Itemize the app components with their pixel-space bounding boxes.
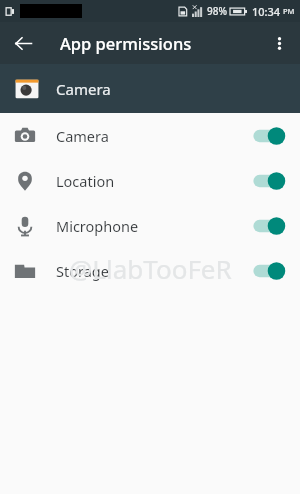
button[interactable]: Camera [0, 113, 300, 158]
button[interactable]: Toggle permission [252, 215, 286, 237]
staticText: 98% [207, 4, 227, 18]
staticText: App permissions [60, 32, 192, 54]
staticText: Storage [56, 261, 252, 281]
button[interactable]: Toggle permission [252, 170, 286, 192]
button[interactable]: Camera [0, 64, 300, 113]
staticText: PM [283, 6, 295, 16]
staticText: @LlabTooFeR [69, 251, 232, 286]
button[interactable]: Back [6, 26, 40, 60]
button[interactable]: Microphone [0, 203, 300, 248]
button[interactable]: Location [0, 158, 300, 203]
staticText: Camera [56, 126, 252, 146]
button[interactable]: More options [262, 26, 296, 60]
button[interactable]: Toggle permission [252, 125, 286, 147]
staticText: Location [56, 171, 252, 191]
staticText: 10:34 [252, 4, 281, 19]
staticText: Camera [56, 79, 111, 99]
button[interactable]: Toggle permission [252, 260, 286, 282]
staticText: Microphone [56, 216, 252, 236]
button[interactable]: Storage [0, 248, 300, 293]
